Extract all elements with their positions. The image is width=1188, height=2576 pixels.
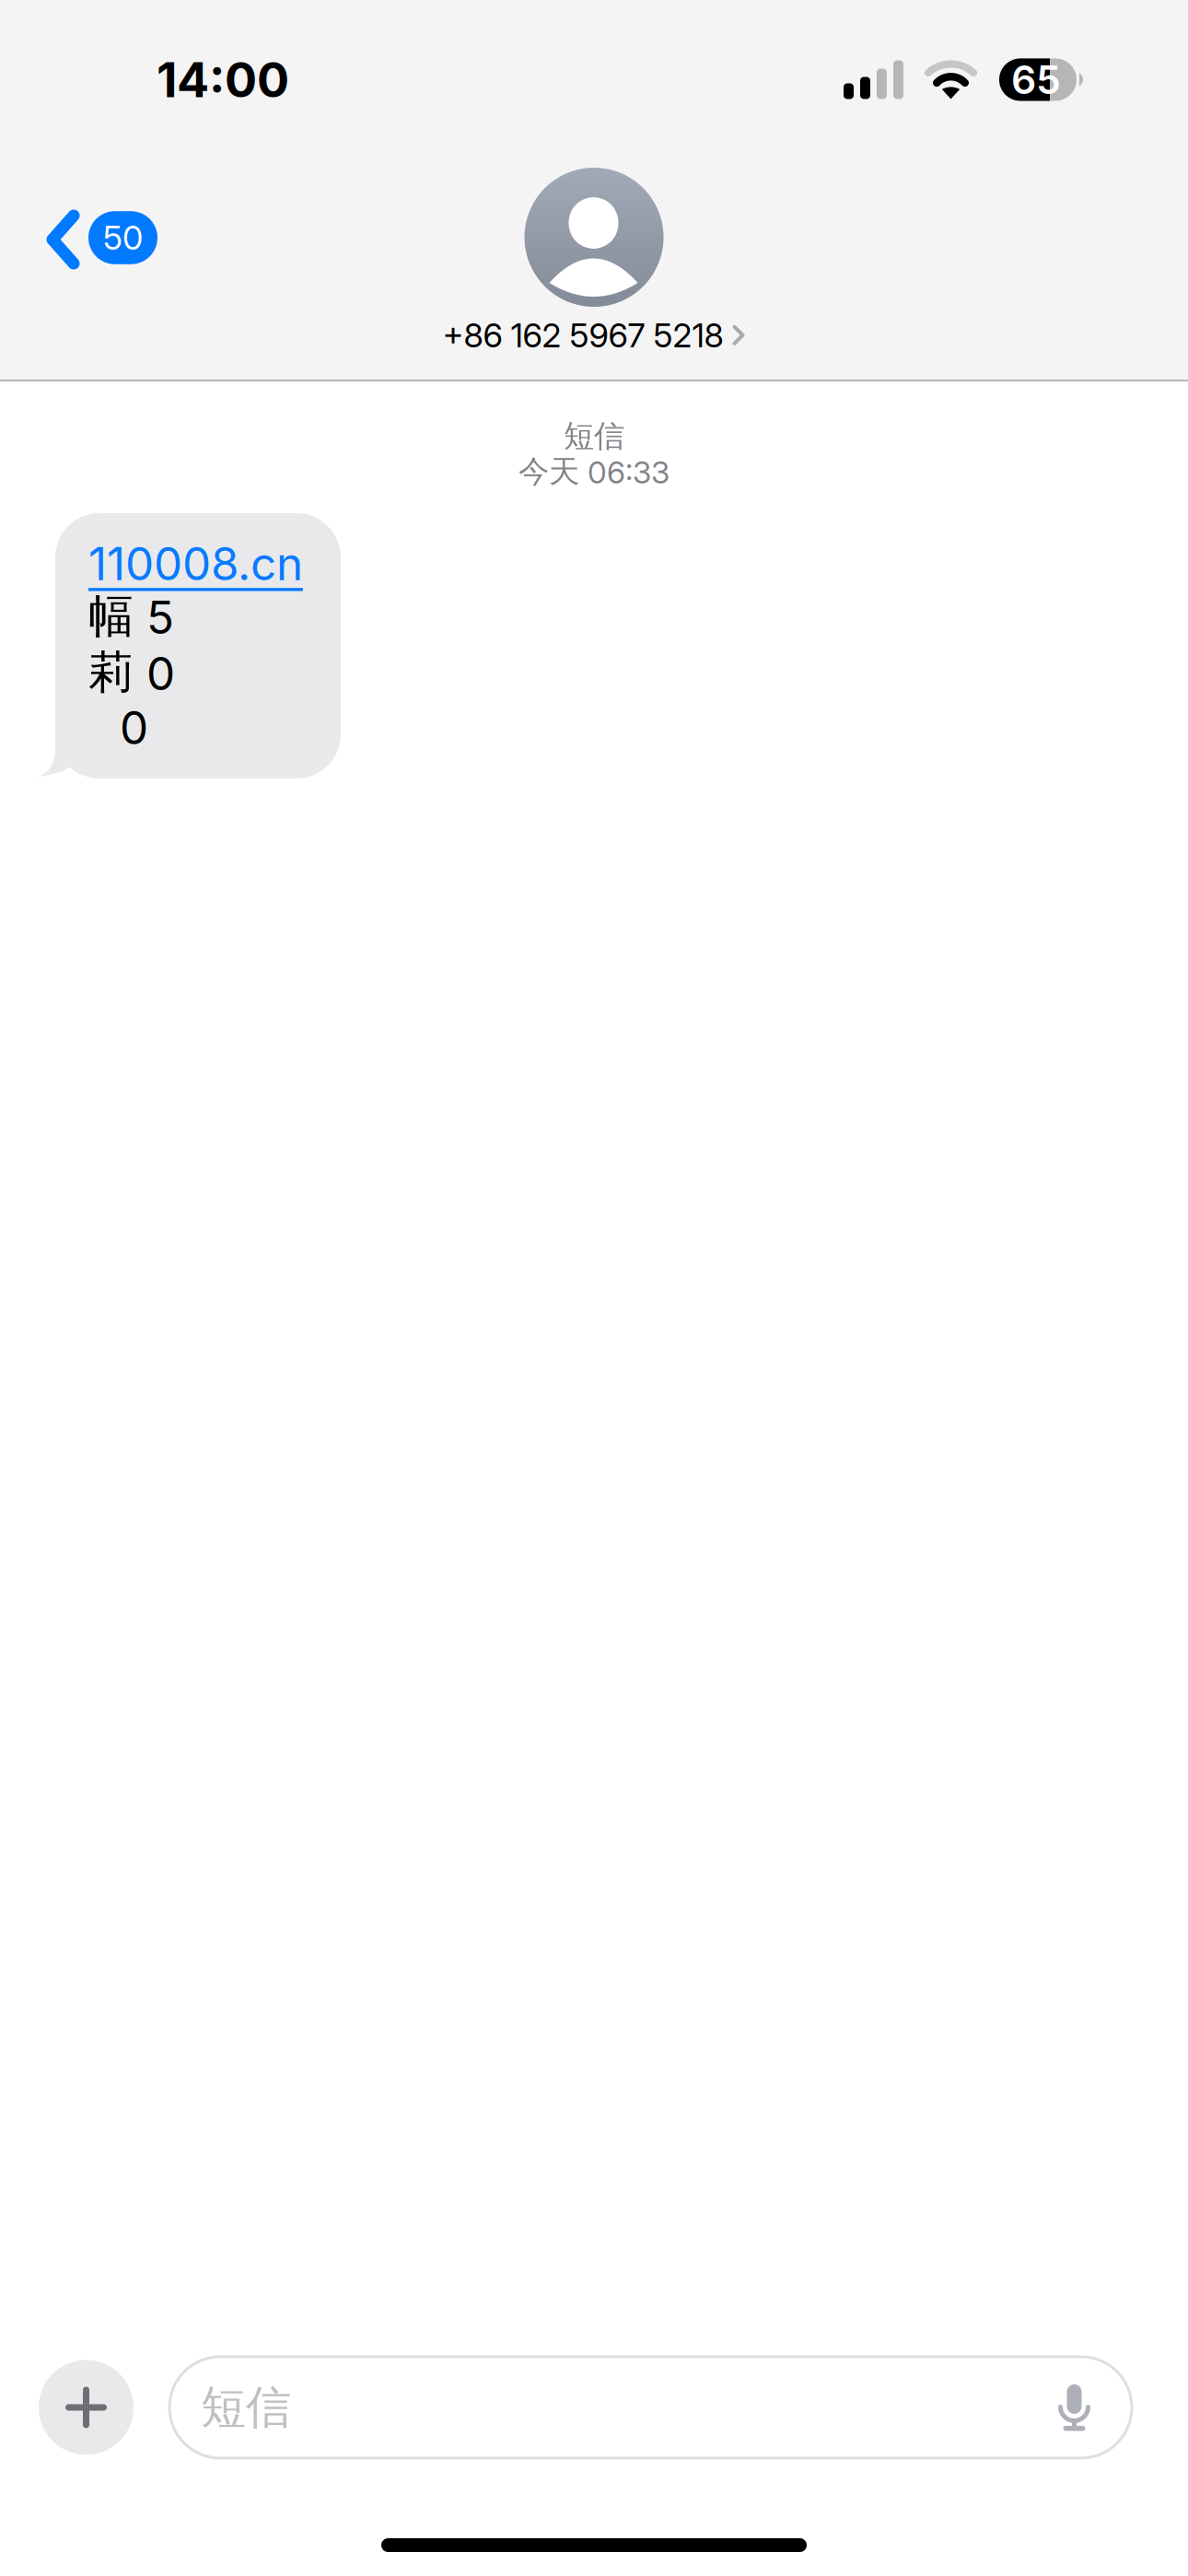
- staticText: +86 162 5967 5218: [443, 315, 723, 355]
- staticText: 14:00: [157, 51, 289, 109]
- staticText: 短信: [564, 417, 624, 456]
- staticText: 今天 06:33: [518, 452, 670, 491]
- button[interactable]: +86 162 5967 5218: [443, 315, 745, 355]
- staticText: 110008.cn: [88, 536, 303, 591]
- button[interactable]: 110008.cn: [88, 536, 303, 588]
- staticText: 50: [103, 218, 143, 258]
- staticText: 短信: [201, 2379, 291, 2436]
- staticText: 幅 5: [88, 588, 174, 645]
- button[interactable]: 短信: [169, 2357, 1132, 2458]
- staticText: 65: [1011, 56, 1061, 103]
- button[interactable]: Add attachment: [39, 2360, 134, 2455]
- button[interactable]: Back: [0, 140, 157, 270]
- staticText: 0: [88, 700, 148, 755]
- staticText: 莉 0: [88, 644, 175, 701]
